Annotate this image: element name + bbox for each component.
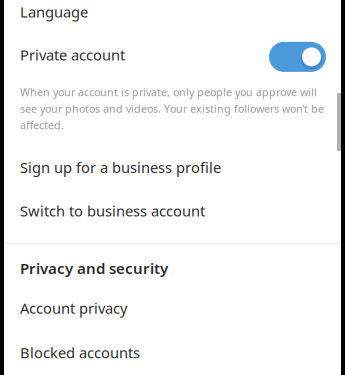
button[interactable]: Language: [4, 0, 341, 33]
staticText: Privacy and security: [20, 258, 168, 278]
button[interactable]: Switch to business account: [4, 189, 341, 232]
button[interactable]: Sign up for a business profile: [4, 146, 341, 189]
staticText: Blocked accounts: [20, 342, 140, 362]
button[interactable]: Account privacy: [4, 286, 341, 329]
button[interactable]: Privacy and security: [4, 247, 341, 290]
staticText: When your account is private, only peopl…: [20, 85, 324, 132]
staticText: Sign up for a business profile: [20, 157, 221, 177]
staticText: Language: [20, 2, 88, 22]
staticText: Private account: [20, 45, 125, 65]
staticText: Switch to business account: [20, 201, 205, 221]
button[interactable]: Private account: [4, 33, 341, 76]
button[interactable]: Blocked accounts: [4, 331, 341, 374]
staticText: Account privacy: [20, 298, 127, 318]
